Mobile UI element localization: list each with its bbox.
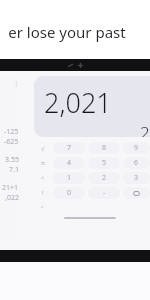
staticText: 2: [140, 121, 150, 137]
button[interactable]: 1: [53, 172, 85, 184]
staticText: 6: [134, 158, 139, 168]
staticText: -625: [4, 137, 19, 147]
staticText: π: [41, 159, 45, 167]
button[interactable]: π: [35, 157, 50, 169]
staticText: 3: [134, 173, 139, 183]
button[interactable]: ⋮: [0, 76, 22, 243]
staticText: ^: [41, 174, 45, 182]
staticText: ,022: [5, 193, 19, 203]
button[interactable]: √: [35, 142, 50, 154]
staticText: !: [42, 189, 44, 197]
staticText: ⋮: [13, 80, 19, 87]
staticText: 7: [67, 143, 72, 153]
button[interactable]: °: [35, 202, 50, 214]
staticText: 2: [102, 173, 107, 183]
button[interactable]: 4: [53, 157, 85, 169]
staticText: 3.55: [5, 155, 19, 165]
button[interactable]: 7: [53, 142, 85, 154]
button[interactable]: ^: [35, 172, 50, 184]
staticText: 5: [102, 158, 107, 168]
button[interactable]: 0: [53, 187, 85, 199]
staticText: 0: [67, 188, 72, 198]
button[interactable]: 2,021: [34, 76, 150, 137]
button[interactable]: !: [35, 187, 50, 199]
staticText: 7.1: [9, 165, 19, 175]
button[interactable]: -: [88, 187, 120, 199]
button[interactable]: 6: [123, 157, 150, 169]
staticText: -125: [4, 127, 19, 137]
staticText: 9: [134, 143, 139, 153]
button[interactable]: 5: [88, 157, 120, 169]
staticText: √: [41, 145, 45, 152]
staticText: er lose your past calculat: [0, 22, 142, 42]
staticText: 4: [67, 158, 72, 168]
button[interactable]: 8: [88, 142, 120, 154]
staticText: 1: [67, 173, 72, 183]
staticText: °: [41, 204, 44, 212]
button[interactable]: Backspace: [123, 187, 150, 199]
button[interactable]: 3: [123, 172, 150, 184]
staticText: 21+1: [2, 183, 19, 193]
staticText: 2,021: [44, 84, 112, 121]
button[interactable]: 9: [123, 142, 150, 154]
button[interactable]: 2: [88, 172, 120, 184]
staticText: 8: [102, 143, 107, 153]
staticText: -: [103, 188, 106, 198]
